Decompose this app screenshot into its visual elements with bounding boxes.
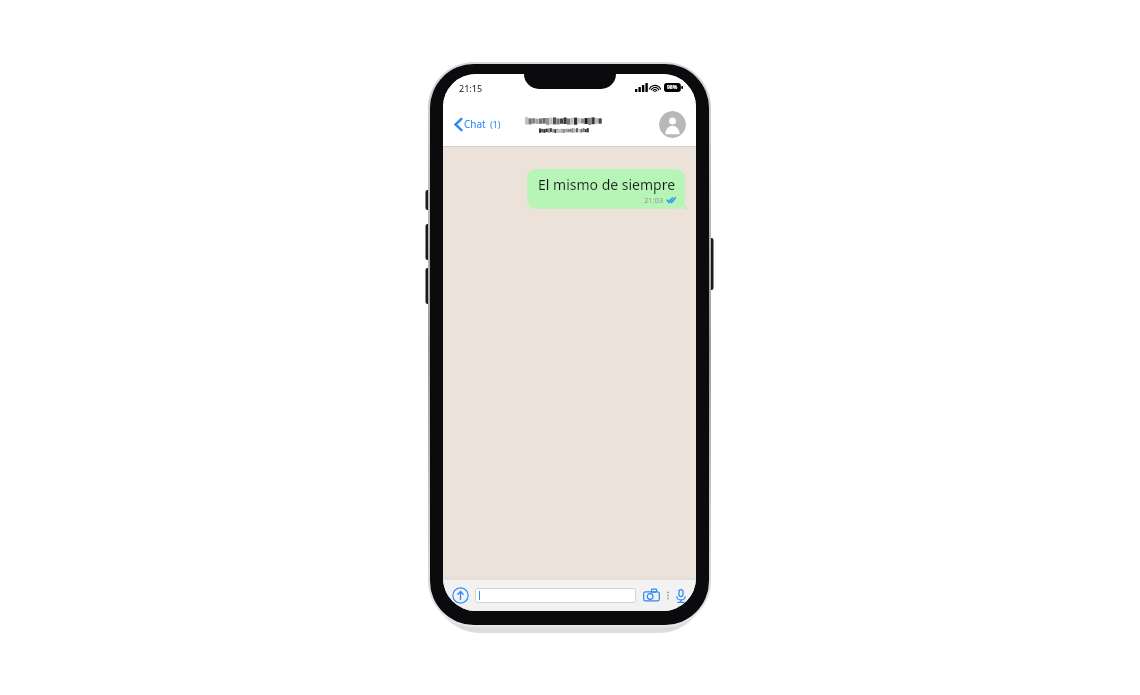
button[interactable]: Contact profile [659,111,686,138]
staticText: Chat [464,117,486,131]
button[interactable]: Chat [451,113,505,135]
button[interactable] [475,588,636,603]
staticText: 21:03 [644,195,664,205]
staticText: El mismo de siempre [538,175,676,194]
button[interactable]: Attach [452,587,469,604]
staticText: 21:15 [459,82,483,94]
staticText: (1) [490,118,501,130]
button[interactable]: More options [664,588,672,603]
button[interactable]: Voice message [675,588,687,604]
staticText: 98% [667,84,678,91]
button[interactable] [525,117,602,133]
button[interactable]: Camera [643,588,660,603]
button[interactable]: El mismo de siempre [527,169,685,209]
